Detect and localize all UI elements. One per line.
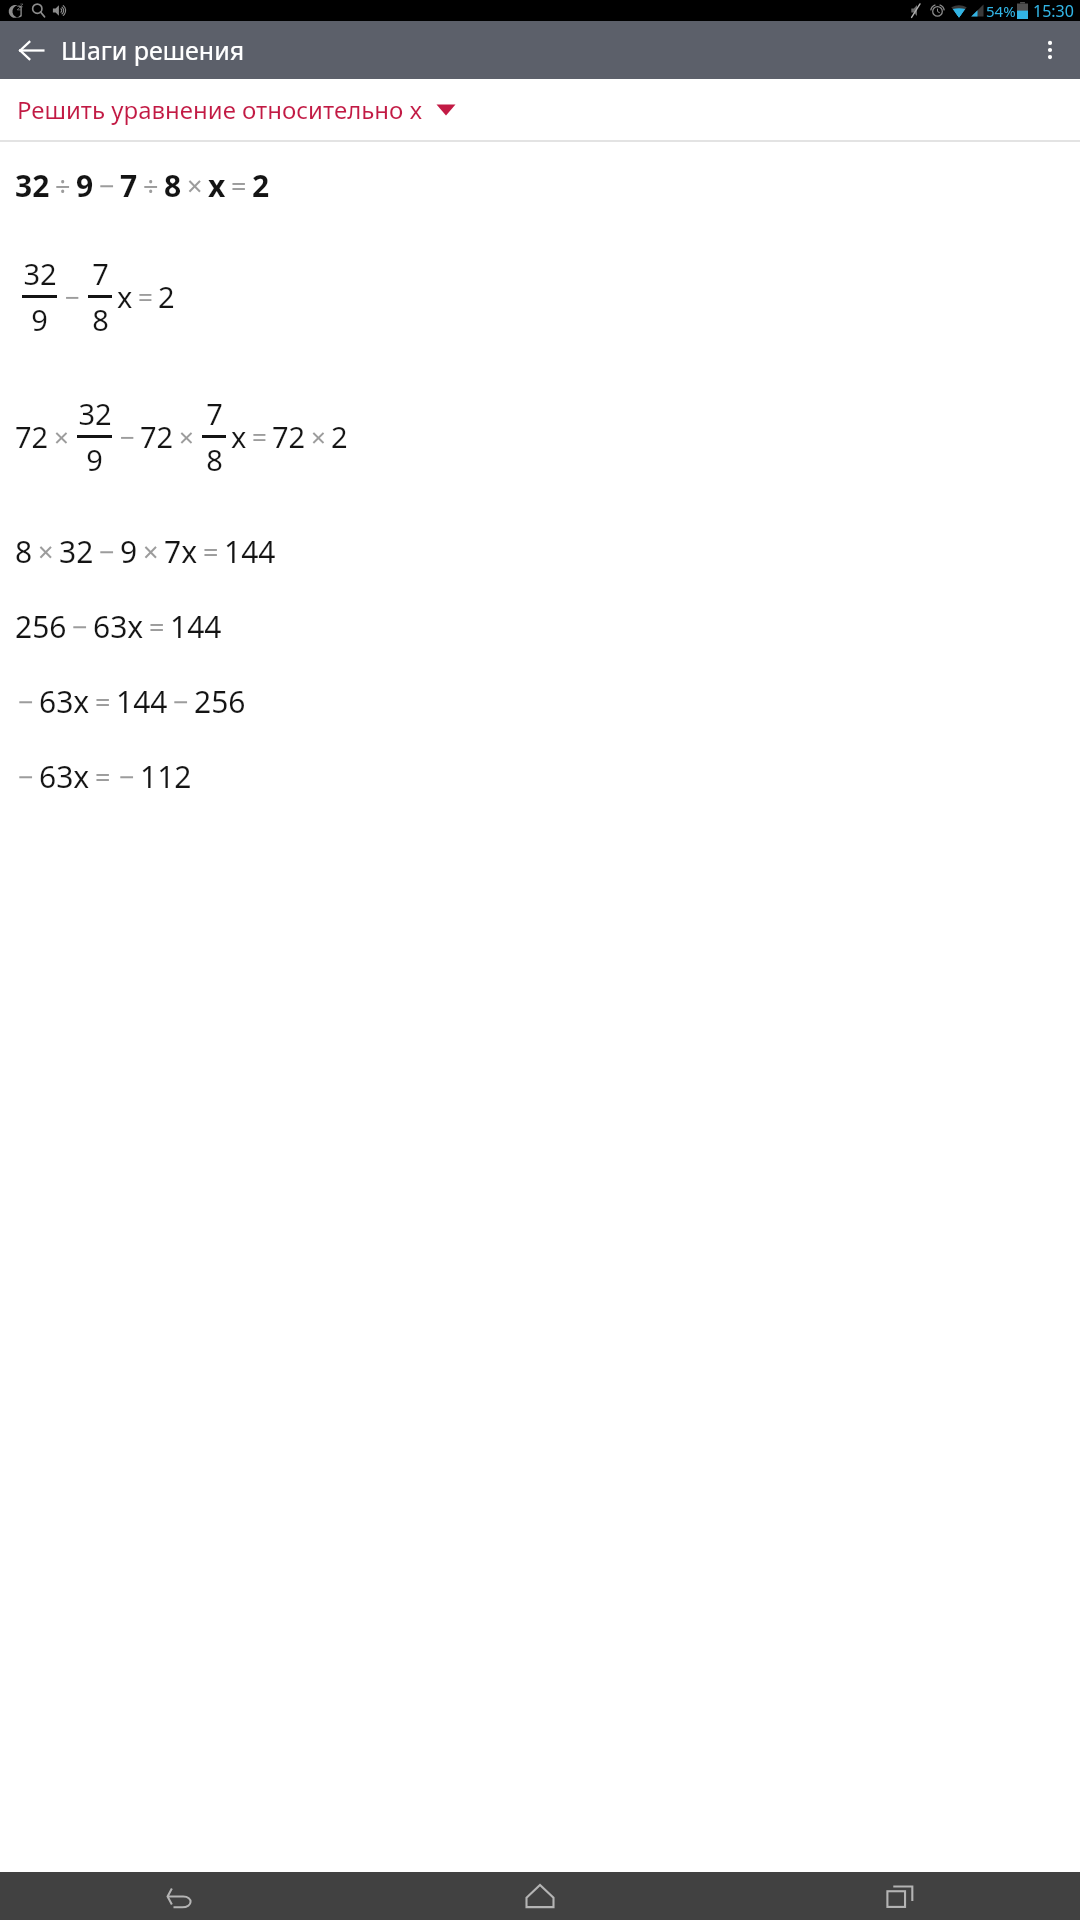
button[interactable]: 72 <box>0 380 1080 492</box>
staticText: 72 <box>15 417 49 456</box>
staticText: 15:30 <box>1033 0 1074 21</box>
button[interactable]: − <box>0 747 1080 805</box>
staticText: 72 <box>272 417 306 456</box>
staticText: 144 <box>224 531 276 572</box>
staticText: = <box>95 758 111 795</box>
staticText: ÷ <box>143 167 159 204</box>
staticText: 8 <box>164 165 182 206</box>
staticText: × <box>54 419 69 454</box>
button[interactable]: Back <box>0 1872 360 1920</box>
staticText: − <box>18 758 34 795</box>
button[interactable]: 32 <box>0 156 1080 214</box>
staticText: 8 <box>206 440 223 479</box>
staticText: 112 <box>140 756 192 797</box>
staticText: = <box>203 533 219 570</box>
staticText: 7 <box>92 254 109 293</box>
staticText: 2 <box>331 417 348 456</box>
staticText: 9 <box>86 440 103 479</box>
staticText: − <box>18 683 34 720</box>
staticText: × <box>179 419 194 454</box>
staticText: x <box>117 277 133 316</box>
button[interactable]: More options <box>1025 25 1075 75</box>
staticText: 9 <box>76 165 94 206</box>
button[interactable]: Home <box>360 1872 720 1920</box>
staticText: x <box>208 165 226 206</box>
staticText: 7 <box>120 165 138 206</box>
staticText: 8 <box>15 531 33 572</box>
staticText: = <box>252 419 267 454</box>
staticText: 144 <box>116 681 168 722</box>
staticText: 72 <box>140 417 174 456</box>
staticText: 256 <box>15 606 67 647</box>
staticText: = <box>95 683 111 720</box>
staticText: − <box>173 683 189 720</box>
button[interactable]: − <box>0 672 1080 730</box>
staticText: 63x <box>39 756 90 797</box>
staticText: 32 <box>15 165 50 206</box>
staticText: 7 <box>206 394 223 433</box>
staticText: ÷ <box>55 167 71 204</box>
staticText: × <box>38 533 54 570</box>
staticText: 9 <box>120 531 138 572</box>
button[interactable]: 32 <box>0 240 1080 352</box>
staticText: × <box>311 419 326 454</box>
staticText: 2 <box>158 277 175 316</box>
staticText: 7x <box>164 531 198 572</box>
staticText: × <box>143 533 159 570</box>
staticText: Шаги решения <box>61 33 245 67</box>
staticText: 256 <box>194 681 246 722</box>
staticText: 32 <box>78 394 112 433</box>
button[interactable]: Recent apps <box>720 1872 1080 1920</box>
button[interactable]: 8 <box>0 522 1080 580</box>
staticText: 8 <box>92 300 109 339</box>
staticText: 2 <box>252 165 270 206</box>
staticText: 63x <box>39 681 90 722</box>
button[interactable]: Back <box>6 25 56 75</box>
staticText: 32 <box>59 531 94 572</box>
staticText: 9 <box>31 300 48 339</box>
staticText: − <box>99 533 115 570</box>
staticText: − <box>120 419 135 454</box>
staticText: 144 <box>170 606 222 647</box>
staticText: 54% <box>986 1 1016 21</box>
staticText: Решить уравнение относительно x <box>17 93 423 126</box>
staticText: − <box>99 167 115 204</box>
staticText: − <box>65 279 80 314</box>
staticText: x <box>231 417 247 456</box>
button[interactable]: 256 <box>0 597 1080 655</box>
staticText: = <box>231 167 247 204</box>
staticText: × <box>187 167 203 204</box>
staticText: − <box>119 758 135 795</box>
staticText: = <box>149 608 165 645</box>
staticText: 32 <box>23 254 57 293</box>
button[interactable]: Решить уравнение относительно x <box>0 79 1080 140</box>
staticText: − <box>72 608 88 645</box>
staticText: = <box>138 279 153 314</box>
staticText: 63x <box>93 606 144 647</box>
